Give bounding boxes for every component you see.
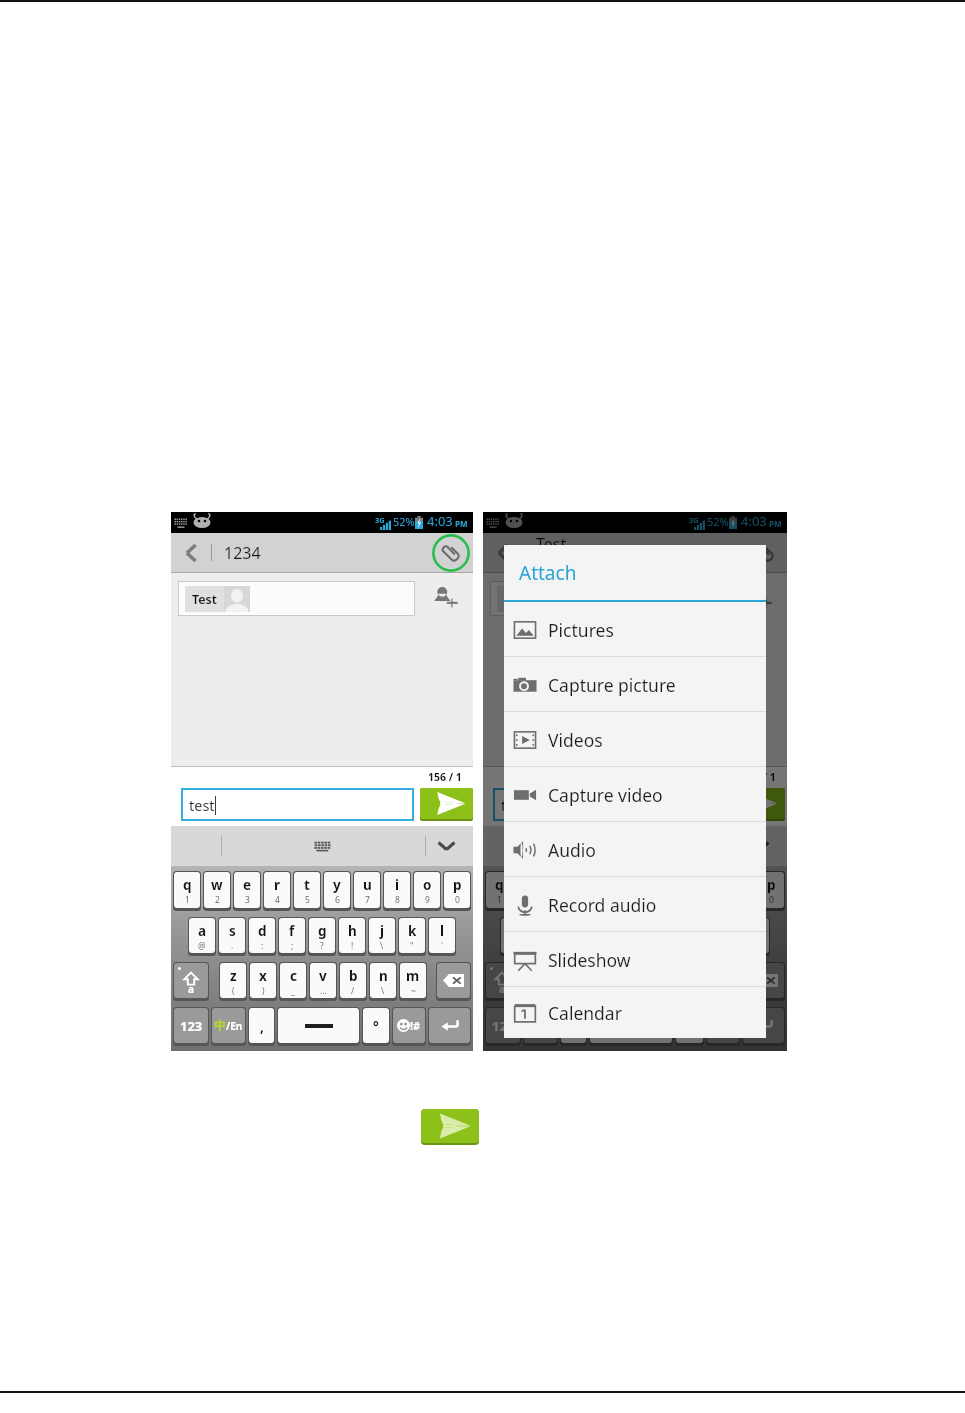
button[interactable]: u	[667, 871, 695, 911]
staticText: Capture picture	[548, 673, 676, 697]
staticText: 1	[185, 894, 190, 906]
button[interactable]: ,	[560, 1007, 587, 1046]
button[interactable]: l	[428, 917, 456, 956]
button[interactable]: Slideshow	[504, 932, 766, 987]
button[interactable]: Shift	[485, 962, 519, 1001]
button[interactable]: Pictures	[504, 602, 766, 657]
button[interactable]: Audio	[504, 822, 766, 877]
button[interactable]: h	[338, 917, 366, 956]
button[interactable]: i	[383, 871, 411, 911]
button[interactable]: Send	[420, 788, 473, 821]
button[interactable]: Attach	[432, 534, 470, 572]
button[interactable]: Send	[732, 788, 785, 821]
button[interactable]: w	[516, 871, 545, 911]
button[interactable]: w	[203, 871, 231, 911]
button[interactable]: Hide keyboard	[433, 833, 459, 859]
button[interactable]: o	[727, 871, 755, 911]
button[interactable]: n	[681, 962, 710, 1001]
button[interactable]: Add contact	[428, 580, 462, 614]
button[interactable]: Videos	[504, 712, 766, 767]
button[interactable]: Add contact	[742, 580, 776, 614]
button[interactable]: i	[697, 871, 725, 911]
button[interactable]: h	[652, 917, 680, 956]
button[interactable]: Back	[171, 533, 211, 572]
button[interactable]: p	[443, 871, 471, 911]
button[interactable]: j	[682, 917, 710, 956]
button[interactable]: p	[757, 871, 785, 911]
button[interactable]: Capture picture	[504, 657, 766, 712]
button[interactable]: Switch language	[211, 1007, 246, 1046]
button[interactable]: Shift	[173, 962, 209, 1001]
button[interactable]: g	[622, 917, 650, 956]
button[interactable]: t	[607, 871, 635, 911]
button[interactable]: x	[557, 962, 586, 1001]
button[interactable]: o	[413, 871, 441, 911]
button[interactable]: q	[173, 871, 201, 911]
button[interactable]: Send	[421, 1109, 479, 1145]
button[interactable]: l	[742, 917, 770, 956]
button[interactable]: j	[368, 917, 396, 956]
button[interactable]: m	[399, 962, 427, 1001]
button[interactable]: d	[248, 917, 276, 956]
button[interactable]: Numbers	[173, 1007, 209, 1046]
button[interactable]: test	[181, 788, 414, 821]
button[interactable]: Switch language	[523, 1007, 558, 1046]
button[interactable]: Emoji and symbols	[706, 1007, 740, 1046]
button[interactable]: k	[712, 917, 740, 956]
button[interactable]: test	[493, 788, 726, 821]
button[interactable]: Attach	[746, 534, 784, 572]
button[interactable]: s	[531, 917, 560, 956]
staticText: p	[767, 876, 776, 894]
button[interactable]: Space	[277, 1007, 360, 1046]
button[interactable]: s	[218, 917, 246, 956]
button[interactable]: e	[547, 871, 575, 911]
button[interactable]: b	[339, 962, 367, 1001]
staticText: 2	[528, 894, 533, 906]
button[interactable]: r	[263, 871, 291, 911]
button[interactable]: r	[577, 871, 605, 911]
button[interactable]: c	[279, 962, 307, 1001]
button[interactable]: Enter	[742, 1007, 785, 1046]
staticText: e	[243, 876, 252, 894]
button[interactable]: d	[562, 917, 590, 956]
button[interactable]: Calendar	[504, 987, 766, 1038]
button[interactable]: f	[278, 917, 306, 956]
button[interactable]: t	[293, 871, 321, 911]
button[interactable]: z	[527, 962, 555, 1001]
button[interactable]: f	[592, 917, 620, 956]
staticText: Calendar	[548, 1001, 622, 1025]
button[interactable]: x	[249, 962, 277, 1001]
button[interactable]: a	[188, 917, 216, 956]
button[interactable]: ,	[248, 1007, 275, 1046]
button[interactable]: z	[219, 962, 247, 1001]
button[interactable]: v	[309, 962, 337, 1001]
button[interactable]: v	[619, 962, 648, 1001]
button[interactable]: Capture video	[504, 767, 766, 822]
button[interactable]: Record audio	[504, 877, 766, 932]
button[interactable]: q	[485, 871, 514, 911]
button[interactable]: c	[588, 962, 617, 1001]
button[interactable]: g	[308, 917, 336, 956]
button[interactable]: b	[650, 962, 679, 1001]
staticText: test	[189, 795, 215, 815]
button[interactable]: m	[712, 962, 741, 1001]
button[interactable]: Space	[589, 1007, 673, 1046]
button[interactable]: Hide keyboard	[747, 833, 773, 859]
button[interactable]: y	[637, 871, 665, 911]
button[interactable]: k	[398, 917, 426, 956]
button[interactable]: Numbers	[485, 1007, 521, 1046]
button[interactable]: Enter	[428, 1007, 471, 1046]
button[interactable]: Delete	[436, 962, 471, 1001]
button[interactable]: °	[362, 1007, 390, 1046]
button[interactable]: n	[369, 962, 397, 1001]
button[interactable]: Back	[483, 533, 523, 572]
button[interactable]: Emoji and symbols	[392, 1007, 426, 1046]
button[interactable]: a	[500, 917, 529, 956]
button[interactable]: e	[233, 871, 261, 911]
button[interactable]: u	[353, 871, 381, 911]
button[interactable]: y	[323, 871, 351, 911]
button[interactable]: °	[675, 1007, 704, 1046]
button[interactable]: Delete	[750, 962, 785, 1001]
